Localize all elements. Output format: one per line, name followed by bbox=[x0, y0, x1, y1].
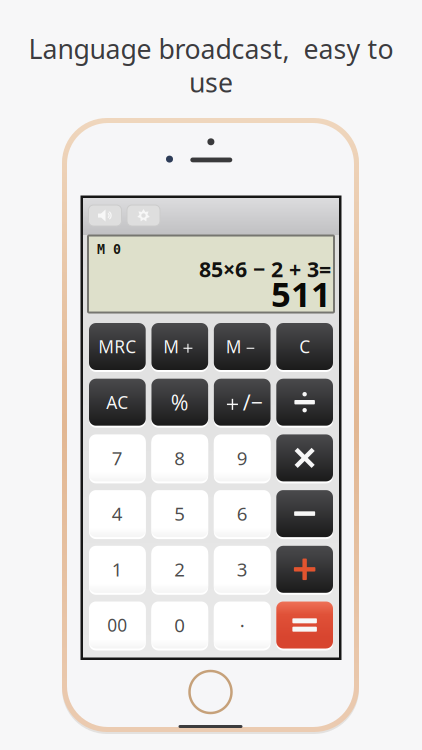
staticText: 5 bbox=[174, 501, 185, 526]
staticText: 6 bbox=[237, 501, 248, 526]
button[interactable]: Settings bbox=[127, 205, 160, 226]
staticText: 85×6 − 2 + 3= bbox=[199, 255, 331, 283]
staticText: 1 bbox=[112, 557, 123, 582]
staticText: 7 bbox=[112, 445, 123, 470]
staticText: % bbox=[171, 388, 189, 416]
button[interactable]: 5 bbox=[151, 490, 208, 537]
button[interactable]: 4 bbox=[89, 490, 146, 537]
button[interactable]: AC bbox=[89, 379, 146, 426]
button[interactable]: M－ bbox=[214, 323, 271, 370]
button[interactable]: 00 bbox=[89, 601, 146, 648]
button[interactable]: 7 bbox=[89, 434, 146, 481]
button[interactable]: Add bbox=[276, 546, 333, 593]
staticText: 3 bbox=[237, 557, 248, 582]
button[interactable]: Multiply bbox=[276, 434, 333, 481]
button[interactable]: 0 bbox=[151, 601, 208, 648]
staticText: 9 bbox=[237, 445, 248, 470]
button[interactable]: 9 bbox=[214, 434, 271, 481]
button[interactable]: 8 bbox=[151, 434, 208, 481]
button[interactable]: Divide bbox=[276, 379, 333, 426]
button[interactable]: 1 bbox=[89, 546, 146, 593]
button[interactable]: 3 bbox=[214, 546, 271, 593]
staticText: M＋ bbox=[163, 335, 196, 358]
button[interactable]: ＋/− bbox=[214, 379, 271, 426]
staticText: 2 bbox=[174, 557, 185, 582]
staticText: 4 bbox=[112, 501, 123, 526]
staticText: 00 bbox=[107, 613, 127, 636]
button[interactable]: M＋ bbox=[151, 323, 208, 370]
button[interactable]: 6 bbox=[214, 490, 271, 537]
button[interactable]: · bbox=[214, 601, 271, 648]
staticText: use bbox=[189, 64, 233, 100]
staticText: ＋/− bbox=[222, 388, 263, 416]
button[interactable]: MRC bbox=[89, 323, 146, 370]
staticText: AC bbox=[106, 391, 128, 414]
button[interactable]: C bbox=[276, 323, 333, 370]
button[interactable]: Sound bbox=[88, 205, 121, 226]
staticText: MRC bbox=[98, 335, 136, 358]
staticText: C bbox=[299, 335, 310, 358]
staticText: 8 bbox=[174, 445, 185, 470]
staticText: 0 bbox=[174, 613, 185, 637]
staticText: M－ bbox=[226, 335, 259, 358]
staticText: 511 bbox=[271, 270, 331, 316]
button[interactable]: 2 bbox=[151, 546, 208, 593]
button[interactable]: Subtract bbox=[276, 490, 333, 537]
staticText: M 0 bbox=[97, 242, 121, 257]
staticText: Language broadcast, easy to bbox=[28, 31, 393, 66]
button[interactable]: % bbox=[151, 379, 208, 426]
staticText: · bbox=[240, 613, 245, 637]
button[interactable]: Equals bbox=[276, 601, 333, 648]
